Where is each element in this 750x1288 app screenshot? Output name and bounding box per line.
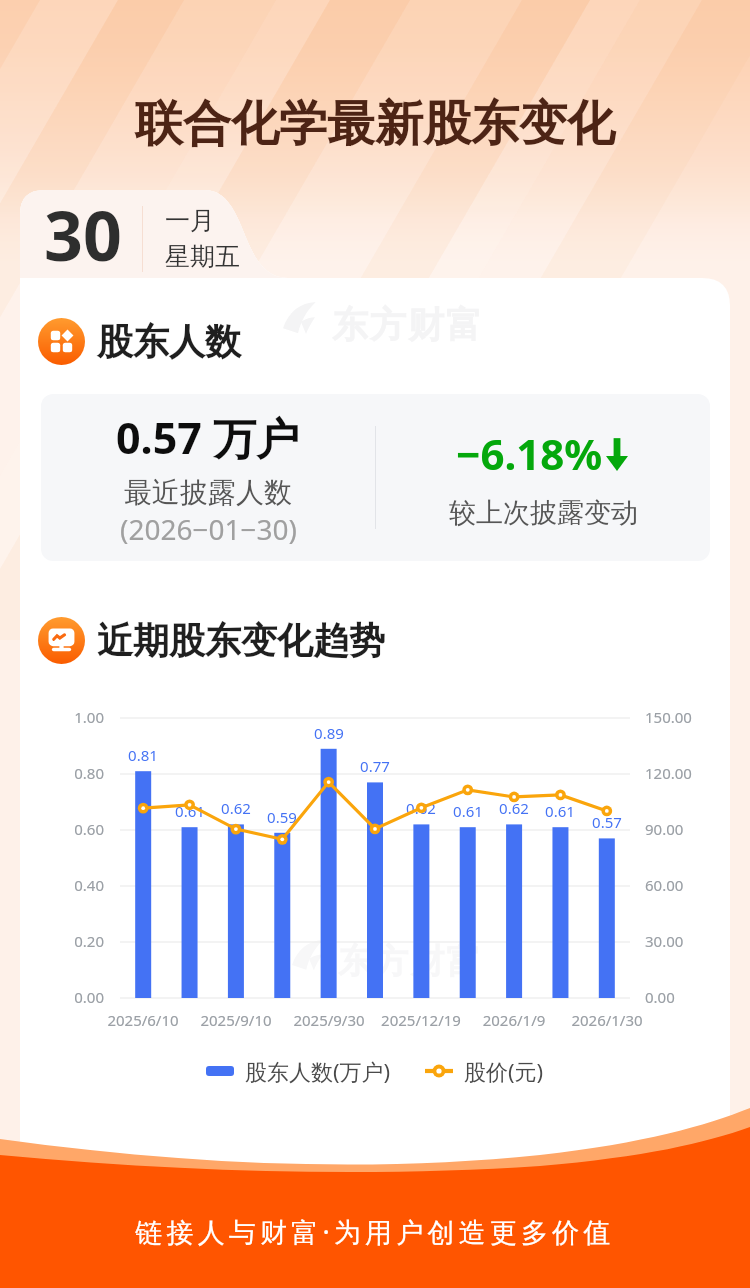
- button[interactable]: −6.18%: [376, 394, 710, 561]
- staticText: 0.62: [206, 798, 266, 818]
- staticText: 150.00: [645, 707, 692, 727]
- staticText: 2025/6/10: [73, 1010, 213, 1030]
- staticText: 0.40: [44, 875, 104, 895]
- staticText: 2026/1/30: [537, 1010, 677, 1030]
- staticText: 一月: [165, 205, 215, 236]
- staticText: 0.80: [44, 763, 104, 783]
- button[interactable]: 近期股东变化趋势: [38, 616, 385, 664]
- staticText: 0.00: [645, 987, 675, 1007]
- staticText: 东方财富: [331, 302, 483, 347]
- staticText: 0.77: [345, 756, 405, 776]
- staticText: 东方财富: [338, 940, 483, 983]
- staticText: 较上次披露变动: [449, 496, 638, 530]
- staticText: 股东人数(万户): [245, 1056, 391, 1086]
- staticText: 0.57 万户: [116, 408, 300, 467]
- button[interactable]: 0.57 万户: [41, 394, 375, 561]
- staticText: 120.00: [645, 763, 692, 783]
- staticText: 0.62: [391, 798, 451, 818]
- button[interactable]: 股东人数: [38, 317, 241, 365]
- staticText: 0.00: [44, 987, 104, 1007]
- staticText: 近期股东变化趋势: [97, 618, 385, 663]
- staticText: −6.18%: [456, 425, 603, 482]
- staticText: 星期五: [165, 241, 240, 272]
- staticText: 0.60: [44, 819, 104, 839]
- staticText: 2025/9/30: [259, 1010, 399, 1030]
- staticText: 0.61: [438, 801, 498, 821]
- button[interactable]: 报告日期 1月30日 星期五: [20, 190, 223, 278]
- staticText: 1.00: [44, 707, 104, 727]
- staticText: 0.61: [160, 801, 220, 821]
- staticText: 联合化学最新股东变化: [0, 94, 750, 154]
- staticText: 2025/9/10: [166, 1010, 306, 1030]
- staticText: (2026−01−30): [120, 510, 297, 548]
- staticText: 0.89: [299, 723, 359, 743]
- staticText: 链接人与财富·为用户创造更多价值: [0, 1213, 750, 1250]
- staticText: 2026/1/9: [444, 1010, 584, 1030]
- staticText: 0.20: [44, 931, 104, 951]
- staticText: 股价(元): [464, 1056, 544, 1086]
- staticText: 0.62: [484, 798, 544, 818]
- staticText: 2025/12/19: [351, 1010, 491, 1030]
- staticText: 60.00: [645, 875, 684, 895]
- staticText: 0.57: [577, 812, 637, 832]
- staticText: 0.59: [252, 807, 312, 827]
- button[interactable]: 股东人数(万户): [206, 1056, 391, 1086]
- staticText: 0.61: [530, 801, 590, 821]
- button[interactable]: 股价(元): [425, 1056, 544, 1086]
- staticText: 最近披露人数: [124, 475, 292, 510]
- staticText: 30: [44, 188, 122, 276]
- staticText: 90.00: [645, 819, 684, 839]
- staticText: 0.81: [113, 745, 173, 765]
- staticText: 股东人数: [97, 319, 241, 364]
- staticText: 30.00: [645, 931, 684, 951]
